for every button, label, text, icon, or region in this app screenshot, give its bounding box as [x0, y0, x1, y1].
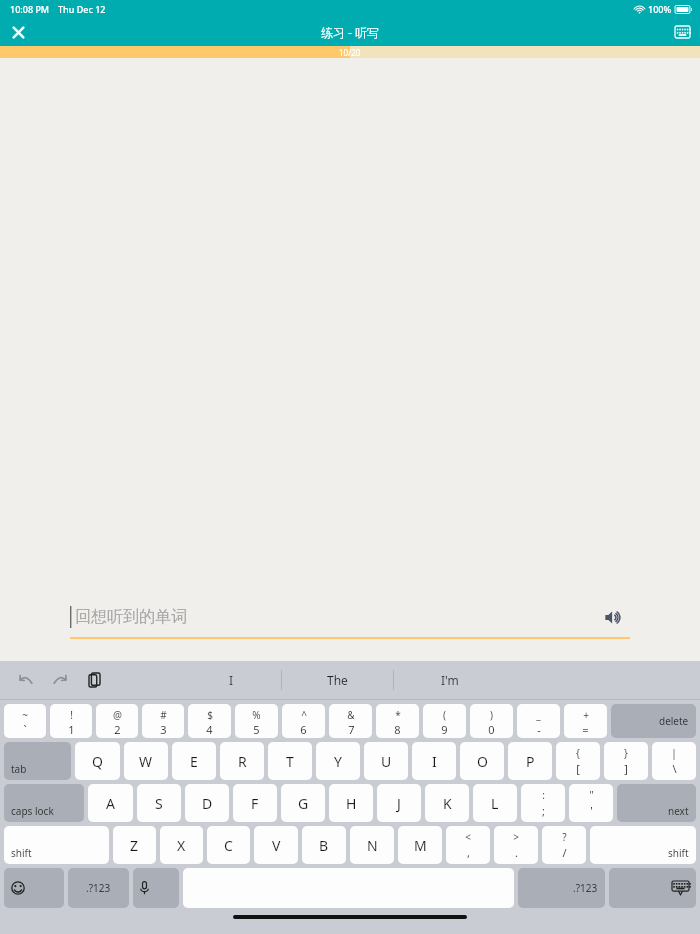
button[interactable]: caps lock	[4, 784, 84, 822]
staticText: A	[106, 794, 115, 813]
button[interactable]: #	[142, 704, 184, 738]
button[interactable]: |	[652, 742, 696, 780]
button[interactable]: delete	[611, 704, 696, 738]
button[interactable]: Emoji	[4, 868, 64, 908]
button[interactable]: 回想听到的单词	[70, 606, 596, 628]
button[interactable]: T	[268, 742, 312, 780]
staticText: .?123	[86, 881, 111, 895]
staticText: >	[513, 830, 519, 844]
staticText: R	[238, 752, 247, 771]
staticText: {	[576, 746, 580, 760]
button[interactable]: _	[517, 704, 560, 738]
button[interactable]: M	[398, 826, 442, 864]
button[interactable]: .?123	[518, 868, 605, 908]
staticText: J	[397, 794, 401, 813]
button[interactable]: ?	[542, 826, 586, 864]
button[interactable]: X	[160, 826, 203, 864]
button[interactable]: <	[446, 826, 490, 864]
staticText: 8	[394, 722, 401, 734]
button[interactable]: C	[207, 826, 250, 864]
button[interactable]: )	[470, 704, 513, 738]
button[interactable]: P	[508, 742, 552, 780]
button[interactable]: O	[460, 742, 504, 780]
button[interactable]: E	[172, 742, 216, 780]
button[interactable]: ^	[282, 704, 325, 738]
button[interactable]: B	[302, 826, 346, 864]
button[interactable]: Z	[113, 826, 156, 864]
button[interactable]: I	[181, 661, 281, 699]
button[interactable]: +	[564, 704, 607, 738]
button[interactable]: tab	[4, 742, 71, 780]
staticText: &	[347, 708, 355, 722]
staticText: `	[23, 722, 27, 734]
button[interactable]: .?123	[68, 868, 129, 908]
button[interactable]: D	[185, 784, 229, 822]
button[interactable]: Toggle keyboard	[664, 18, 700, 46]
button[interactable]: U	[364, 742, 408, 780]
staticText: 练习 - 听写	[321, 24, 380, 40]
staticText: !	[70, 708, 73, 722]
button[interactable]: S	[137, 784, 181, 822]
staticText: $	[207, 708, 213, 722]
button[interactable]: (	[423, 704, 466, 738]
button[interactable]: L	[473, 784, 517, 822]
button[interactable]: Paste	[80, 666, 108, 694]
button[interactable]: $	[188, 704, 231, 738]
button[interactable]: shift	[4, 826, 109, 864]
button[interactable]: >	[494, 826, 538, 864]
button[interactable]: Undo	[12, 666, 40, 694]
button[interactable]: G	[281, 784, 325, 822]
button[interactable]: Redo	[46, 666, 74, 694]
button[interactable]: *	[376, 704, 419, 738]
button[interactable]: {	[556, 742, 600, 780]
button[interactable]: Close	[0, 18, 36, 46]
button[interactable]: shift	[590, 826, 696, 864]
staticText: delete	[659, 714, 689, 728]
staticText: "	[589, 788, 594, 802]
staticText: (	[443, 708, 446, 722]
button[interactable]: I'm	[394, 661, 505, 699]
staticText: G	[298, 794, 309, 813]
staticText: E	[190, 752, 198, 771]
button[interactable]: !	[50, 704, 92, 738]
button[interactable]: Hide keyboard	[609, 868, 696, 908]
staticText: 1	[68, 722, 75, 734]
button[interactable]: }	[604, 742, 648, 780]
staticText: #	[160, 708, 167, 722]
button[interactable]: H	[329, 784, 373, 822]
staticText: I	[432, 752, 437, 771]
button[interactable]: N	[350, 826, 394, 864]
button[interactable]: F	[233, 784, 277, 822]
button[interactable]: V	[254, 826, 298, 864]
button[interactable]: Play audio	[596, 600, 630, 634]
button[interactable]: I	[412, 742, 456, 780]
staticText: 7	[348, 722, 355, 734]
button[interactable]: J	[377, 784, 421, 822]
button[interactable]: R	[220, 742, 264, 780]
button[interactable]: K	[425, 784, 469, 822]
staticText: :	[542, 788, 545, 802]
button[interactable]: &	[329, 704, 372, 738]
button[interactable]: Y	[316, 742, 360, 780]
button[interactable]: The	[282, 661, 393, 699]
button[interactable]: Q	[75, 742, 120, 780]
staticText: T	[286, 752, 294, 771]
button[interactable]: Dictate	[133, 868, 179, 908]
button[interactable]: next	[617, 784, 696, 822]
button[interactable]: %	[235, 704, 278, 738]
staticText: C	[224, 836, 233, 855]
staticText: .?123	[573, 881, 598, 895]
button[interactable]: @	[96, 704, 138, 738]
button[interactable]: :	[521, 784, 565, 822]
staticText: +	[583, 708, 589, 722]
button[interactable]: A	[88, 784, 133, 822]
button[interactable]: W	[124, 742, 168, 780]
staticText: \	[672, 761, 677, 776]
staticText: shift	[11, 846, 32, 860]
button[interactable]: "	[569, 784, 613, 822]
button[interactable]: ~	[4, 704, 46, 738]
staticText: F	[251, 794, 259, 813]
staticText: next	[668, 804, 689, 818]
staticText: W	[139, 752, 153, 771]
